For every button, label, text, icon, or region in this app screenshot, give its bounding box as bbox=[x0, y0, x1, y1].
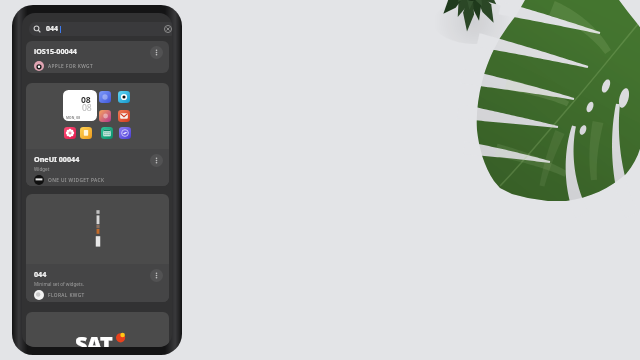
button[interactable]: safari bbox=[119, 127, 131, 139]
button[interactable]: Clear search bbox=[162, 23, 172, 35]
button[interactable]: camera bbox=[118, 91, 130, 103]
staticText: 044 bbox=[46, 24, 59, 34]
button[interactable]: 08 bbox=[26, 83, 169, 186]
staticText: 08 bbox=[82, 102, 92, 114]
button[interactable]: app store bbox=[99, 91, 111, 103]
staticText: 08 bbox=[81, 94, 91, 106]
staticText: MON, 08 bbox=[66, 116, 81, 120]
staticText: APPLE FOR KWGT bbox=[48, 63, 94, 70]
button[interactable]: calendar bbox=[101, 127, 113, 139]
button[interactable]: 044 bbox=[29, 22, 172, 36]
button[interactable]: More options bbox=[150, 269, 163, 282]
button[interactable]: More options bbox=[150, 154, 163, 167]
staticText: ONE UI WIDGET PACK bbox=[48, 177, 105, 184]
button[interactable]: iOS15-00044 bbox=[26, 41, 169, 73]
staticText: Widget bbox=[34, 166, 50, 172]
button[interactable]: notes bbox=[80, 127, 92, 139]
button[interactable]: mail bbox=[118, 110, 130, 122]
staticText: 044 bbox=[34, 269, 47, 279]
staticText: SAT bbox=[75, 329, 112, 347]
staticText: OneUI 00044 bbox=[34, 154, 80, 164]
button[interactable]: photos bbox=[99, 110, 111, 122]
button[interactable]: More options bbox=[150, 46, 163, 59]
staticText: iOS15-00044 bbox=[34, 46, 77, 56]
button[interactable]: SAT bbox=[26, 312, 169, 347]
staticText: FLORAL KWGT bbox=[48, 292, 85, 299]
button[interactable]: flower bbox=[64, 127, 76, 139]
staticText: Minimal set of widgets. bbox=[34, 281, 84, 287]
button[interactable]: 044 bbox=[26, 194, 169, 302]
